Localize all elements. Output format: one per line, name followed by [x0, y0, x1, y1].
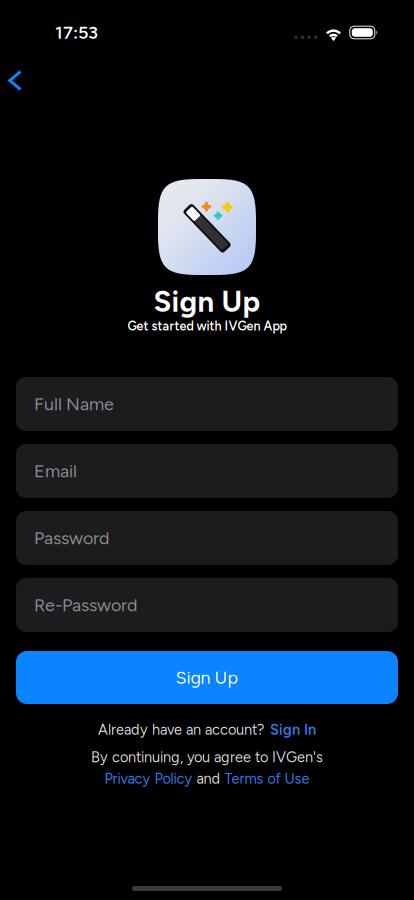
staticText: Sign Up — [153, 284, 260, 319]
staticText: Sign In — [270, 721, 316, 738]
button[interactable]: Email — [16, 444, 398, 498]
staticText: Terms of Use — [224, 770, 309, 787]
staticText: and — [196, 770, 220, 787]
staticText: Get started with IVGen App — [127, 318, 286, 333]
button[interactable]: Password — [16, 511, 398, 565]
staticText: 17:53 — [55, 22, 98, 43]
staticText: By continuing, you agree to IVGen's — [91, 748, 323, 766]
button[interactable]: Privacy Policy — [104, 770, 192, 787]
button[interactable]: Sign Up — [16, 651, 398, 704]
staticText: Re-Password — [34, 594, 137, 616]
staticText: Email — [34, 460, 77, 482]
staticText: Privacy Policy — [104, 770, 192, 787]
button[interactable]: Re-Password — [16, 578, 398, 632]
button[interactable]: Back — [0, 58, 38, 103]
staticText: Already have an account? — [98, 721, 264, 738]
staticText: Password — [34, 527, 109, 549]
button[interactable]: Terms of Use — [224, 770, 309, 787]
button[interactable]: Sign In — [270, 721, 316, 738]
button[interactable]: Full Name — [16, 377, 398, 431]
staticText: Full Name — [34, 393, 114, 415]
staticText: Sign Up — [175, 667, 238, 688]
